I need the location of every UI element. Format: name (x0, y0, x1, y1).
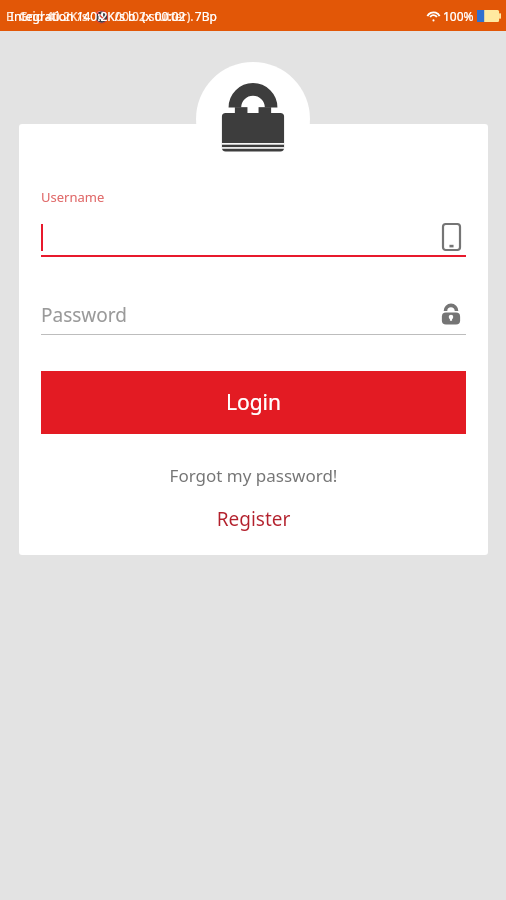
button[interactable]: Login (41, 371, 466, 434)
staticText: Integration 140:2K/s b (x 00:02 7Bp (10, 8, 217, 24)
staticText: Login (226, 388, 282, 417)
button[interactable]: Show password (436, 300, 466, 330)
staticText: Password (41, 302, 127, 328)
staticText: 100% (443, 8, 474, 24)
staticText: Username (41, 188, 105, 206)
button[interactable]: Register (19, 503, 488, 535)
button[interactable]: Forgot my password! (19, 461, 488, 490)
button[interactable]: Phone number (436, 222, 466, 252)
staticText: E Grid 40.2K/s 🔇 00:02 stutter). (6, 8, 194, 24)
